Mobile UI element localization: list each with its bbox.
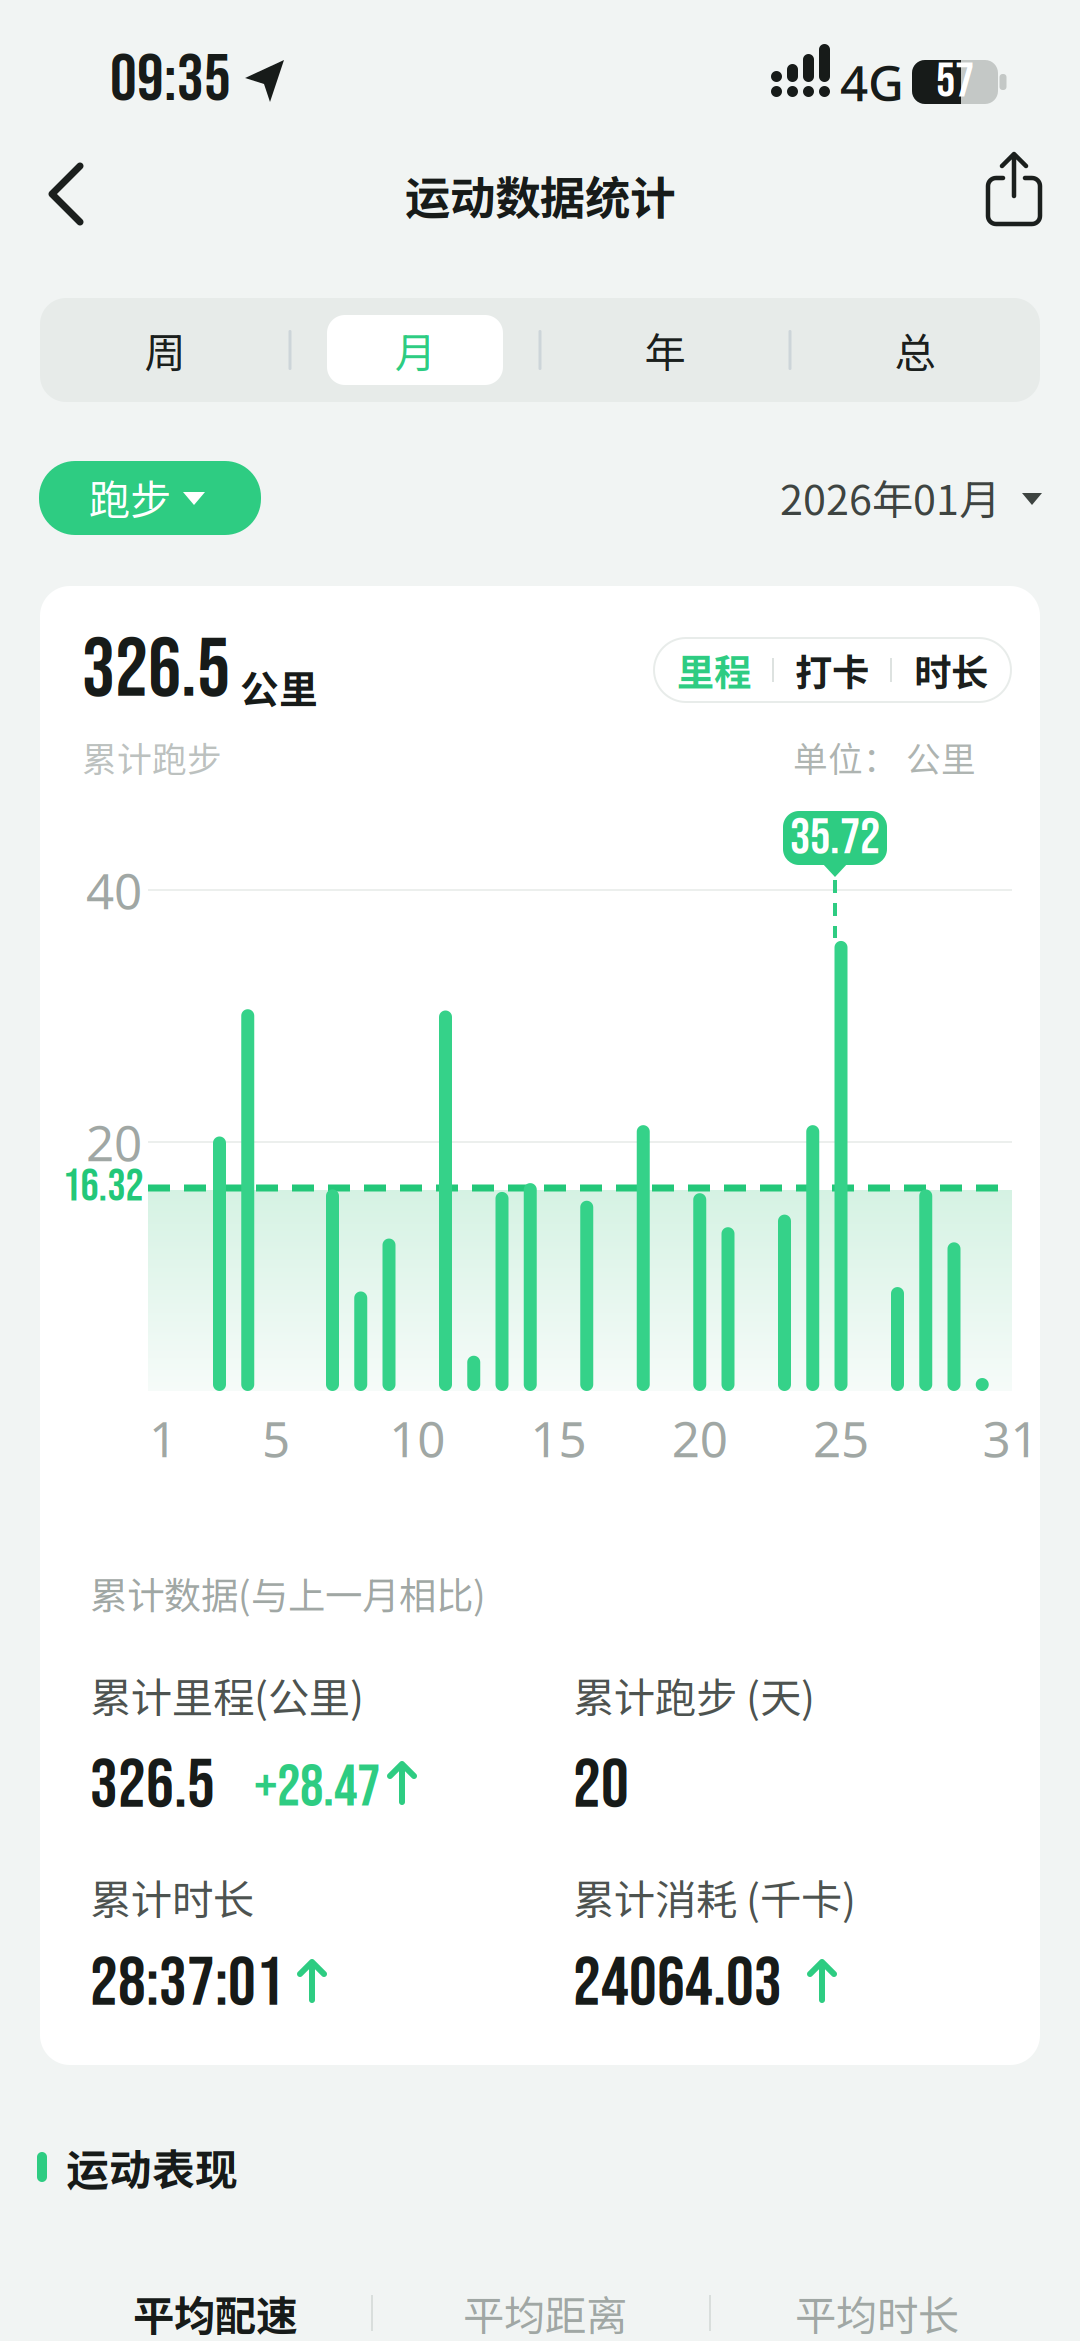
staticText: 2026年01月 [780,467,1000,527]
button[interactable]: 跑步 [39,461,261,535]
staticText: 平均距离 [463,2283,627,2341]
staticText: 326.5 [90,1744,215,1828]
staticText: 里程 [677,643,751,697]
staticText: 5 [262,1405,290,1471]
button[interactable]: 2026年01月 [780,467,1050,527]
button[interactable]: 打卡 [773,638,891,702]
button[interactable]: 时长 [892,638,1010,702]
staticText: 20 [573,1744,629,1828]
staticText: 4G [840,49,904,115]
button[interactable]: 周 [40,298,290,402]
staticText: 16.32 [62,1160,143,1214]
staticText: 09:35 [110,40,231,120]
staticText: +28.47 [254,1753,380,1823]
button[interactable]: 平均配速 [75,2278,355,2341]
staticText: 35.72 [790,808,880,868]
staticText: 累计时长 [90,1867,254,1927]
staticText: 31 [982,1405,1038,1471]
staticText: 25 [813,1405,869,1471]
button[interactable]: Share [982,150,1046,234]
staticText: 累计消耗 (千卡) [573,1867,856,1927]
button[interactable]: 平均距离 [405,2278,685,2341]
staticText: 打卡 [795,643,869,697]
staticText: 20 [86,1109,142,1175]
button[interactable]: 月 [290,298,540,402]
staticText: 20 [672,1405,728,1471]
staticText: 累计跑步 [82,732,222,782]
staticText: 跑步 [89,467,171,527]
staticText: 累计数据(与上一月相比) [90,1566,486,1620]
staticText: 累计跑步 (天) [573,1665,815,1725]
staticText: 时长 [914,643,988,697]
staticText: 15 [530,1405,586,1471]
staticText: 年 [644,320,685,380]
staticText: 运动数据统计 [405,162,675,228]
staticText: 326.5 [82,621,230,721]
staticText: 累计里程(公里) [90,1665,364,1725]
button[interactable]: Back [34,154,98,234]
staticText: 10 [389,1405,445,1471]
button[interactable]: 总 [790,298,1040,402]
staticText: 平均时长 [795,2283,959,2341]
staticText: 周 [144,320,185,380]
staticText: 平均配速 [133,2283,297,2341]
staticText: 40 [86,857,142,923]
staticText: 1 [149,1405,177,1471]
staticText: 公里 [240,659,318,715]
staticText: 单位： 公里 [793,732,976,782]
button[interactable]: 里程 [655,638,773,702]
button[interactable]: 年 [540,298,790,402]
staticText: 运动表现 [66,2136,238,2198]
staticText: 月 [394,320,435,380]
button[interactable]: 平均时长 [737,2278,1017,2341]
staticText: 24064.03 [573,1942,782,2026]
staticText: 28:37:01 [90,1942,284,2026]
staticText: 57 [936,53,974,111]
staticText: 总 [894,320,935,380]
